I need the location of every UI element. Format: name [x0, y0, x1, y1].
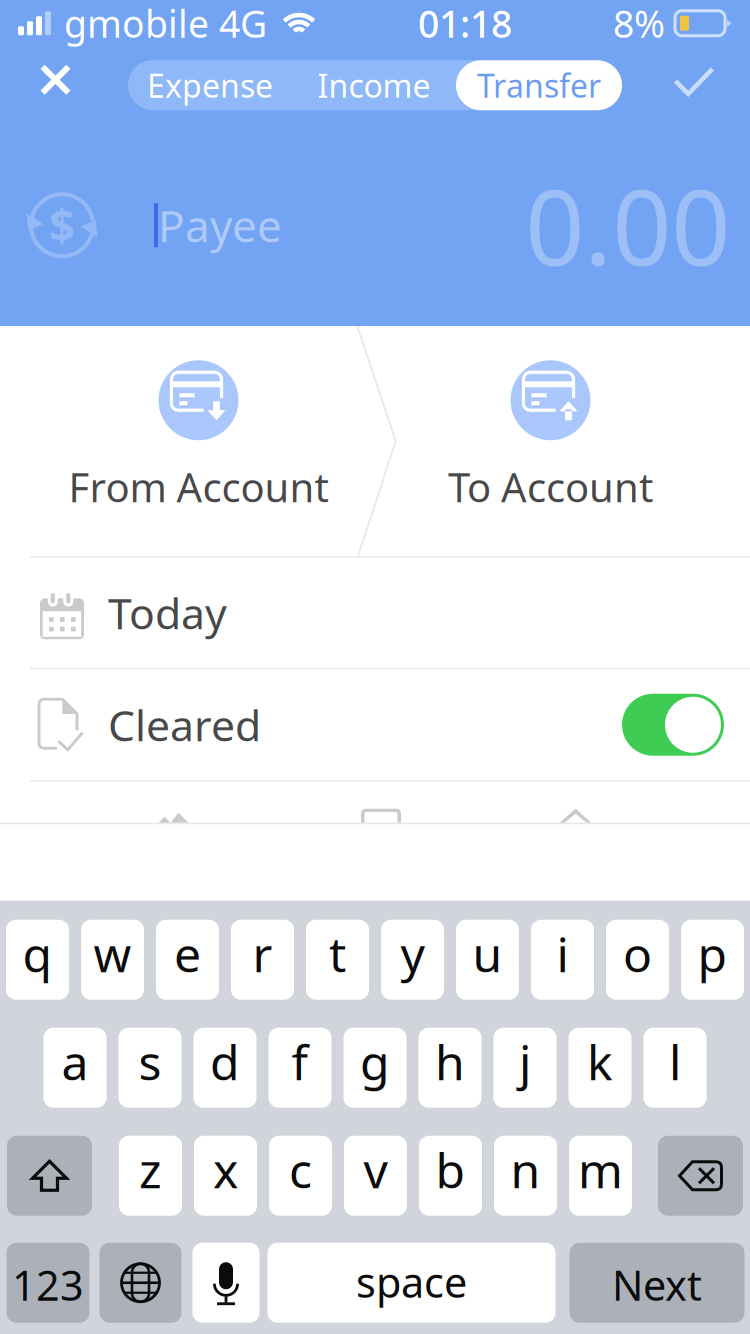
staticText: 123 — [12, 1257, 84, 1312]
button[interactable]: e — [156, 920, 219, 1000]
staticText: x — [213, 1138, 238, 1202]
button[interactable]: a — [43, 1028, 106, 1108]
staticText: z — [139, 1138, 162, 1202]
staticText: c — [289, 1138, 312, 1202]
button[interactable]: l — [643, 1028, 706, 1108]
staticText: r — [252, 922, 272, 986]
button[interactable]: p — [681, 920, 744, 1000]
button[interactable]: space — [267, 1243, 555, 1323]
staticText: l — [669, 1030, 681, 1094]
staticText: w — [93, 922, 131, 986]
staticText: Cleared — [108, 696, 261, 753]
staticText: gmobile 4G — [64, 0, 267, 48]
staticText: Income — [317, 64, 430, 106]
button[interactable] — [658, 1136, 743, 1216]
staticText: n — [510, 1138, 540, 1202]
button[interactable]: Next — [569, 1243, 744, 1323]
button[interactable]: b — [419, 1136, 482, 1216]
staticText: a — [61, 1030, 88, 1094]
staticText: d — [210, 1030, 240, 1094]
button[interactable]: 123 — [6, 1243, 89, 1323]
button[interactable]: v — [344, 1136, 407, 1216]
button[interactable]: Save — [656, 47, 732, 123]
staticText: j — [519, 1030, 531, 1094]
button[interactable]: u — [456, 920, 519, 1000]
button[interactable]: r — [231, 920, 294, 1000]
staticText: m — [578, 1138, 623, 1202]
button[interactable]: s — [118, 1028, 181, 1108]
staticText: e — [174, 922, 201, 986]
staticText: Today — [108, 584, 227, 641]
staticText: u — [472, 922, 502, 986]
staticText: t — [329, 922, 346, 986]
staticText: $ — [49, 194, 75, 254]
button[interactable]: Transfer — [456, 60, 622, 110]
staticText: y — [400, 922, 424, 986]
staticText: From Account — [68, 460, 328, 513]
button[interactable]: f — [268, 1028, 331, 1108]
staticText: g — [360, 1030, 390, 1094]
button[interactable]: t — [306, 920, 369, 1000]
staticText: o — [623, 922, 652, 986]
staticText: v — [363, 1138, 387, 1202]
button[interactable]: j — [493, 1028, 556, 1108]
button[interactable]: g — [343, 1028, 406, 1108]
staticText: 8% — [613, 0, 665, 48]
button[interactable]: Cleared — [622, 694, 724, 756]
button[interactable]: h — [418, 1028, 481, 1108]
button[interactable]: o — [606, 920, 669, 1000]
staticText: s — [138, 1030, 161, 1094]
staticText: Expense — [147, 64, 273, 106]
button[interactable]: Expense — [128, 60, 292, 110]
staticText: i — [556, 922, 568, 986]
staticText: 0.00 — [525, 156, 730, 294]
button[interactable]: Income — [292, 60, 456, 110]
button[interactable]: To Account — [375, 326, 750, 556]
button[interactable]: q — [6, 920, 69, 1000]
staticText: Next — [612, 1257, 702, 1312]
staticText: space — [356, 1254, 467, 1309]
button[interactable]: i — [531, 920, 594, 1000]
staticText: 01:18 — [418, 0, 512, 48]
button[interactable]: d — [193, 1028, 256, 1108]
staticText: Payee — [158, 196, 282, 254]
button[interactable]: m — [569, 1136, 632, 1216]
button[interactable]: Close — [18, 47, 94, 123]
button[interactable]: z — [119, 1136, 182, 1216]
staticText: q — [22, 922, 52, 986]
button[interactable]: Today — [0, 558, 750, 668]
button[interactable]: c — [269, 1136, 332, 1216]
staticText: Transfer — [477, 64, 601, 106]
button[interactable]: w — [81, 920, 144, 1000]
button[interactable]: y — [381, 920, 444, 1000]
staticText: f — [291, 1030, 308, 1094]
staticText: h — [435, 1030, 465, 1094]
staticText: To Account — [448, 460, 653, 513]
button[interactable]: From Account — [0, 326, 375, 556]
staticText: b — [435, 1138, 465, 1202]
button[interactable] — [99, 1243, 181, 1323]
staticText: p — [697, 922, 727, 986]
button[interactable] — [7, 1136, 92, 1216]
staticText: k — [587, 1030, 613, 1094]
button[interactable] — [192, 1243, 259, 1323]
button[interactable]: n — [494, 1136, 557, 1216]
button[interactable]: x — [194, 1136, 257, 1216]
button[interactable]: k — [568, 1028, 631, 1108]
